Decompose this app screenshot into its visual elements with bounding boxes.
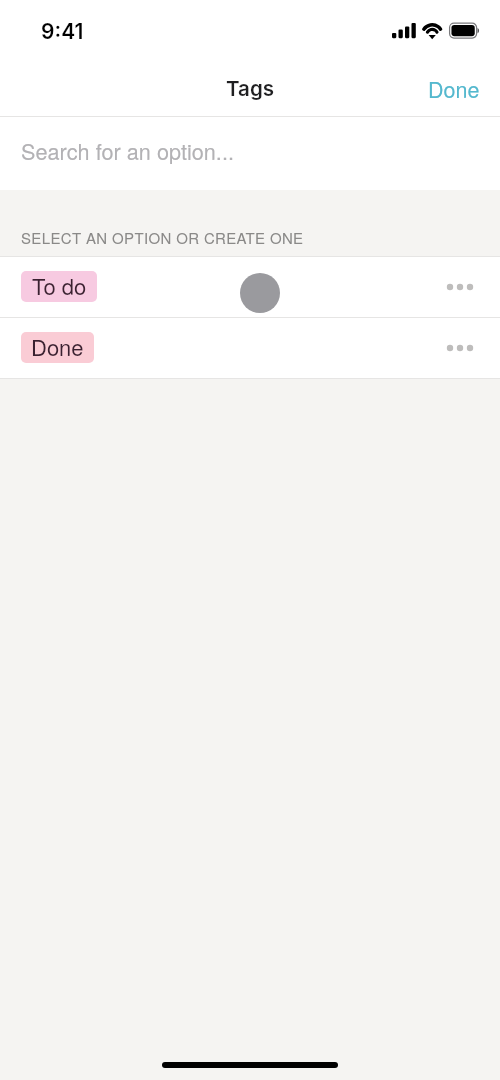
staticText: Done bbox=[428, 73, 480, 104]
button[interactable]: Done bbox=[0, 318, 500, 378]
button[interactable]: More options bbox=[432, 320, 488, 376]
button[interactable]: Done bbox=[407, 64, 500, 111]
staticText: To do bbox=[32, 271, 87, 301]
staticText: Tags bbox=[226, 76, 275, 101]
staticText: Done bbox=[31, 332, 84, 362]
staticText: SELECT AN OPTION OR CREATE ONE bbox=[21, 227, 304, 248]
button[interactable]: To do bbox=[0, 257, 500, 317]
button[interactable]: Search for an option bbox=[0, 117, 500, 190]
button[interactable]: More options bbox=[432, 259, 488, 315]
staticText: Search for an option... bbox=[21, 135, 234, 166]
staticText: 9:41 bbox=[41, 19, 84, 44]
